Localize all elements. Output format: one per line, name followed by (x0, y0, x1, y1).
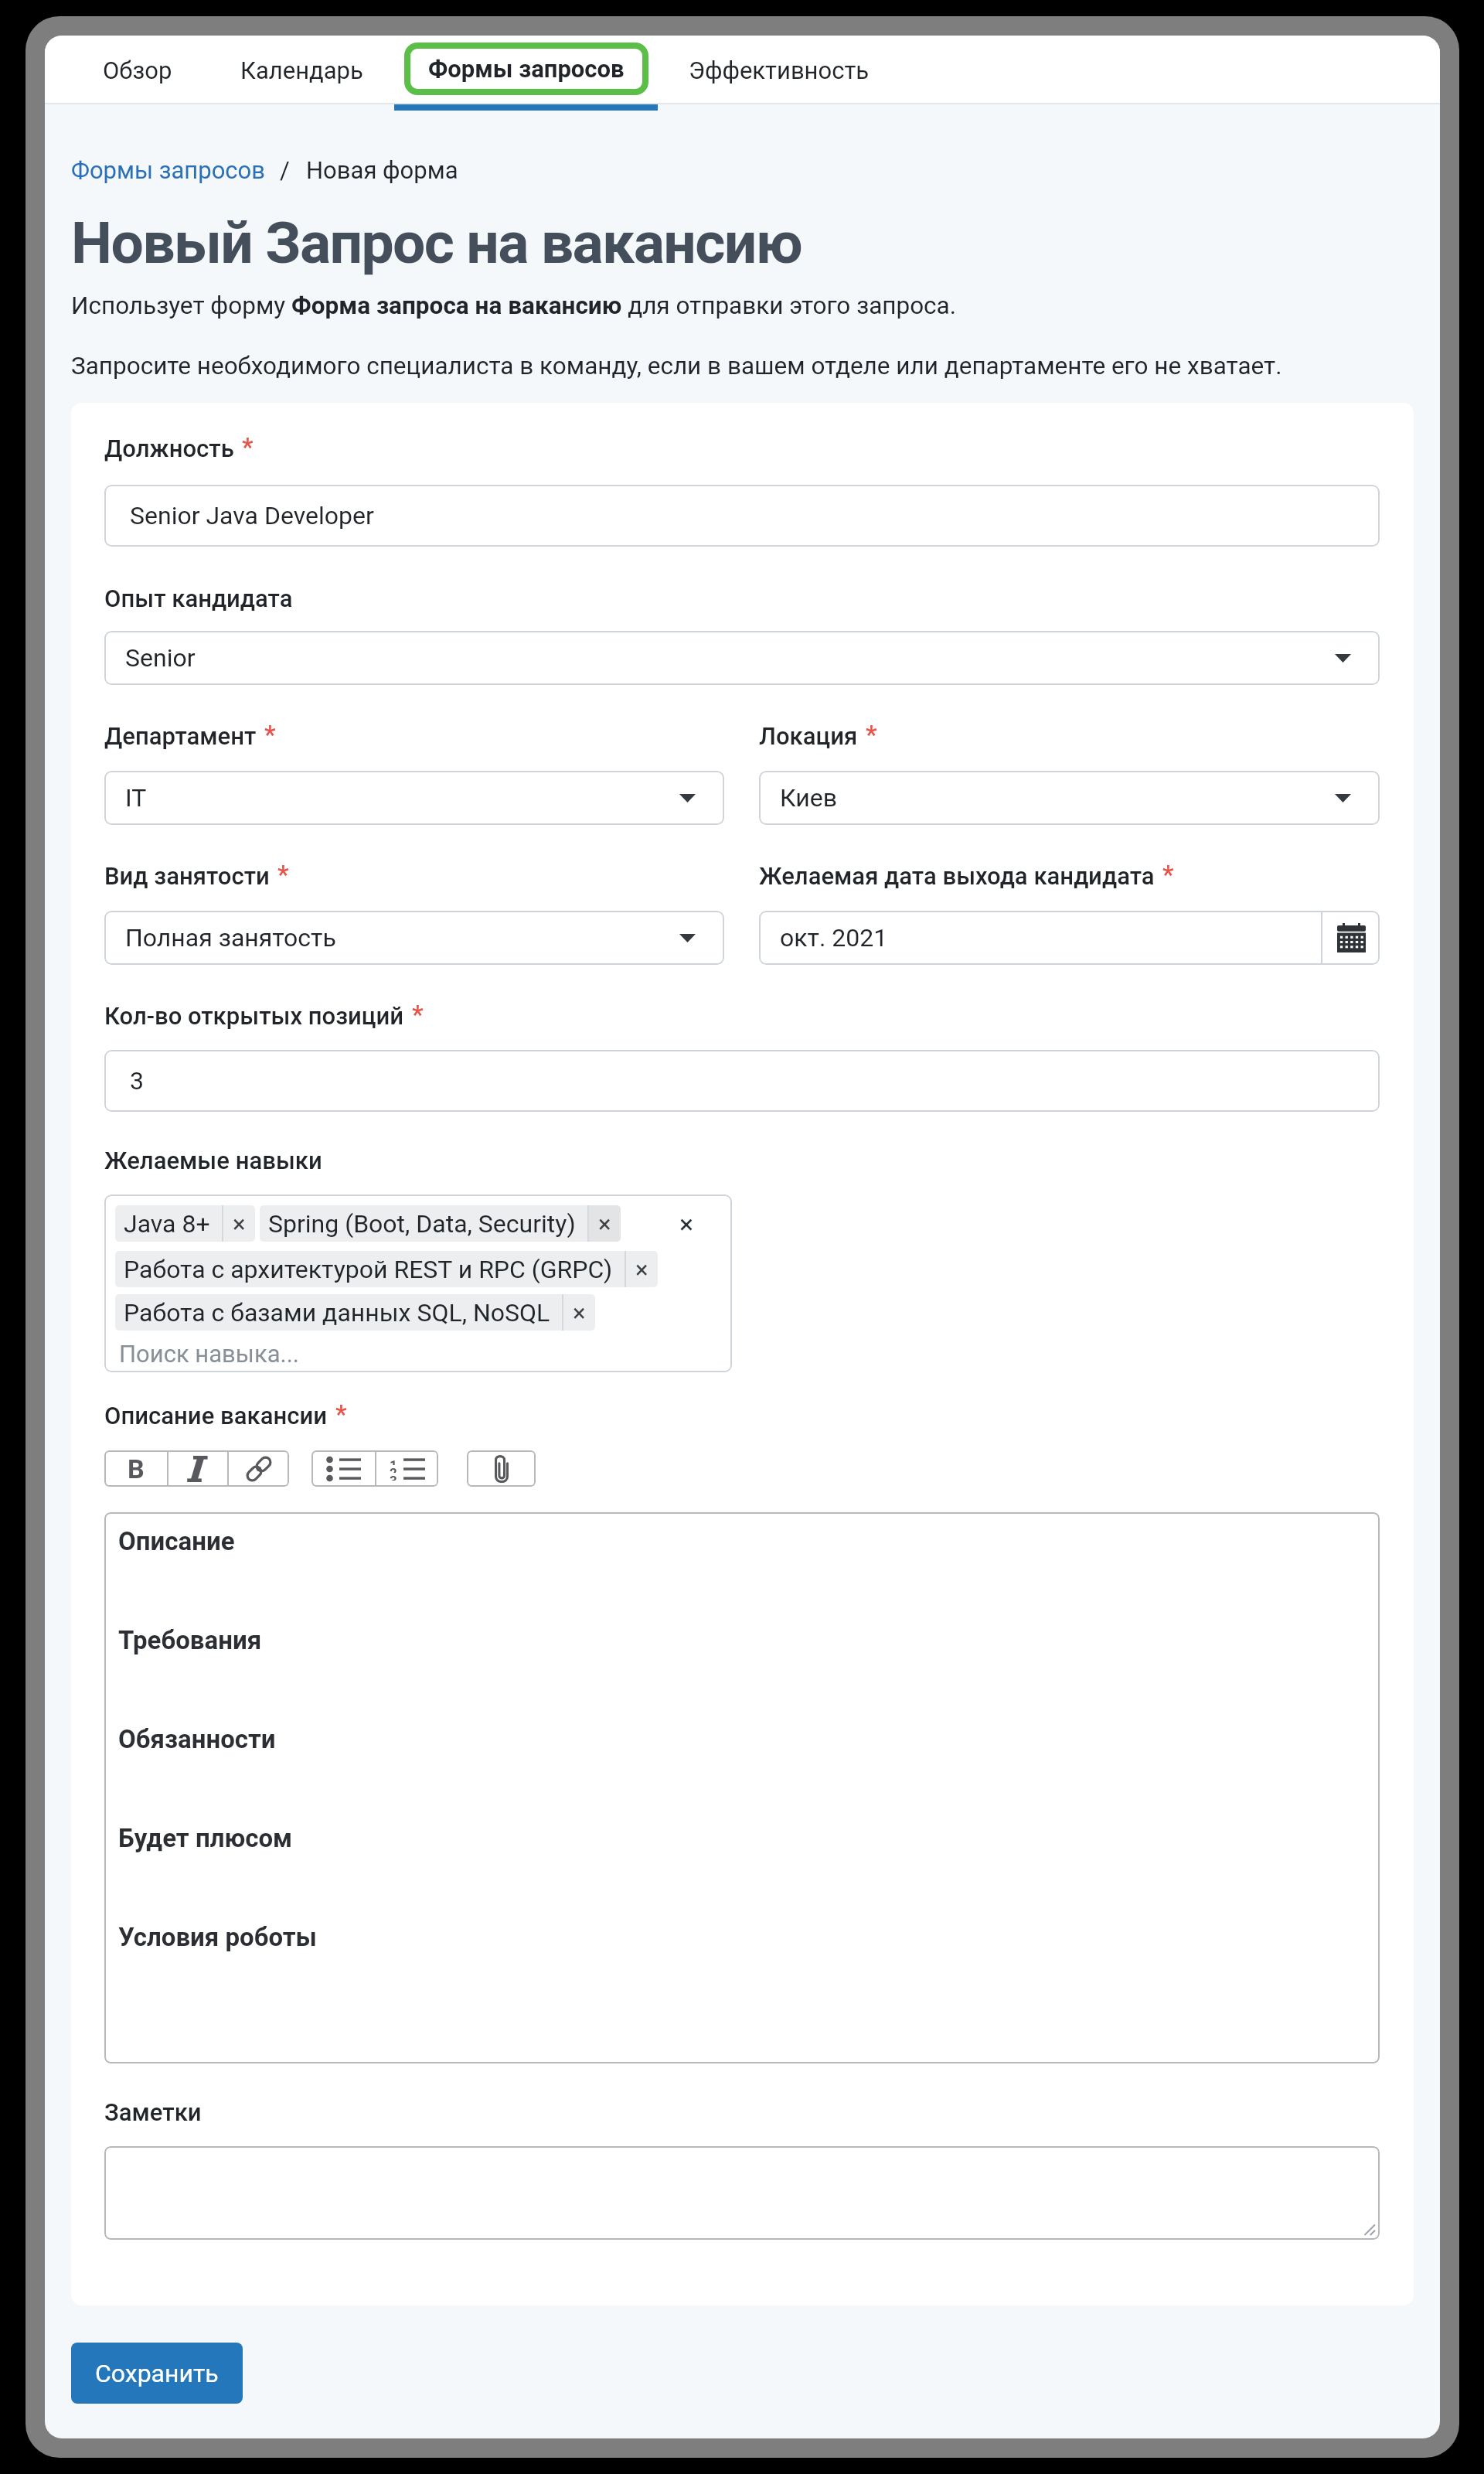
button[interactable] (104, 2146, 1380, 2240)
staticText: * (335, 1399, 347, 1430)
button[interactable]: 3 (104, 1050, 1380, 1112)
button[interactable]: Обзор (86, 43, 189, 98)
staticText: Полная занятость (125, 923, 336, 952)
staticText: Условия роботы (118, 1922, 317, 1952)
staticText: Работа с базами данных SQL, NoSQL (124, 1298, 550, 1327)
staticText: Будет плюсом (118, 1823, 293, 1853)
staticText: Должность (104, 434, 234, 462)
staticText: окт. 2021 (780, 923, 888, 952)
staticText: Опыт кандидата (104, 584, 293, 612)
button[interactable]: Senior Java Developer (104, 485, 1380, 547)
button[interactable]: Эффективность (672, 43, 887, 98)
staticText: Использует форму Форма запроса на ваканс… (71, 291, 957, 320)
staticText: Новый Запрос на вакансию (71, 209, 802, 277)
staticText: Формы запросов (428, 55, 625, 83)
staticText: Эффективность (689, 56, 870, 84)
button[interactable]: Выбрать дату (1322, 911, 1380, 965)
button[interactable]: Киев (759, 771, 1380, 825)
button[interactable]: Прикрепить файл (467, 1450, 536, 1487)
staticText: × (598, 1210, 611, 1238)
staticText: Поиск навыка... (119, 1340, 300, 1368)
button[interactable]: окт. 2021 (759, 911, 1321, 965)
button[interactable]: Сохранить (71, 2343, 243, 2404)
staticText: Senior Java Developer (130, 501, 374, 530)
button[interactable]: Java 8+ (104, 1194, 732, 1372)
button[interactable]: Маркированный список (311, 1450, 375, 1487)
button[interactable]: Формы запросов (404, 43, 648, 95)
staticText: Заметки (104, 2098, 202, 2126)
staticText: Вид занятости (104, 862, 270, 890)
button[interactable]: Описание (104, 1512, 1380, 2063)
button[interactable]: Календарь (223, 43, 380, 98)
button[interactable]: Полная занятость (104, 911, 724, 965)
staticText: * (412, 1000, 424, 1030)
button[interactable]: Жирный (104, 1450, 167, 1487)
staticText: Работа с архитектурой REST и RPC (GRPC) (124, 1255, 613, 1284)
staticText: * (866, 720, 877, 750)
staticText: 2 (390, 1465, 397, 1473)
staticText: Описание (118, 1526, 235, 1556)
staticText: Новая форма (306, 156, 458, 184)
staticText: Требования (118, 1625, 262, 1655)
staticText: Сохранить (95, 2359, 219, 2388)
staticText: B (128, 1453, 145, 1484)
staticText: Java 8+ (124, 1209, 210, 1239)
button[interactable]: Курсив (168, 1450, 227, 1487)
button[interactable]: Вставить ссылку (229, 1450, 289, 1487)
staticText: Желаемые навыки (104, 1147, 322, 1174)
staticText: Запросите необходимого специалиста в ком… (71, 352, 1282, 380)
staticText: Обзор (103, 56, 172, 84)
button[interactable]: Senior (104, 631, 1380, 685)
staticText: × (679, 1208, 694, 1239)
staticText: Киев (780, 783, 837, 813)
staticText: Описание вакансии (104, 1402, 328, 1430)
staticText: Календарь (240, 56, 363, 84)
staticText: Формы запросов (71, 156, 265, 184)
staticText: * (264, 720, 276, 750)
button[interactable]: Формы запросов (71, 156, 265, 184)
staticText: × (635, 1256, 648, 1283)
staticText: 3 (390, 1473, 397, 1481)
staticText: IT (125, 783, 147, 813)
button[interactable]: IT (104, 771, 724, 825)
button[interactable]: Удалить (626, 1251, 658, 1287)
staticText: * (277, 860, 289, 890)
button[interactable]: Удалить (223, 1205, 255, 1242)
staticText: × (233, 1210, 246, 1238)
button[interactable]: Удалить (589, 1205, 621, 1242)
staticText: Департамент (104, 722, 257, 750)
staticText: Локация (759, 722, 858, 750)
button[interactable]: Очистить всё (669, 1205, 705, 1242)
staticText: Spring (Boot, Data, Security) (268, 1209, 576, 1239)
staticText: / (280, 156, 290, 184)
staticText: * (242, 432, 254, 462)
staticText: Обязанности (118, 1724, 276, 1754)
staticText: Желаемая дата выхода кандидата (759, 862, 1155, 890)
staticText: 1 (390, 1457, 397, 1465)
staticText: × (573, 1299, 586, 1327)
staticText: Senior (125, 643, 196, 673)
staticText: * (1162, 860, 1174, 890)
button[interactable]: Удалить (563, 1294, 595, 1331)
staticText: 3 (130, 1066, 144, 1096)
staticText: Кол-во открытых позиций (104, 1002, 404, 1030)
button[interactable]: Нумерованный список (376, 1450, 438, 1487)
